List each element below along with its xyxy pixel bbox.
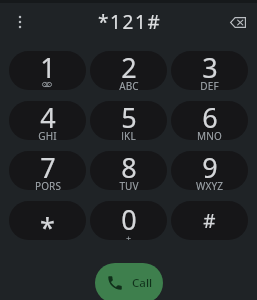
staticText: 4 [40, 101, 56, 136]
staticText: # [203, 208, 216, 234]
button[interactable]: 2 [90, 51, 167, 90]
button[interactable]: * [9, 201, 86, 240]
staticText: ABC [119, 79, 139, 90]
button[interactable]: 4 [9, 101, 86, 140]
staticText: 5 [121, 101, 137, 136]
button[interactable]: Call [95, 263, 163, 300]
button[interactable]: # [171, 201, 248, 240]
staticText: 9 [202, 151, 218, 186]
staticText: 1 [40, 51, 56, 86]
button[interactable]: 7 [9, 151, 86, 190]
button[interactable]: 1 [9, 51, 86, 90]
staticText: 0 [121, 201, 137, 238]
staticText: DEF [200, 79, 219, 90]
staticText: 3 [202, 51, 218, 86]
staticText: MNO [197, 129, 222, 140]
staticText: * [40, 209, 55, 240]
staticText: GHI [38, 129, 57, 140]
staticText: TUV [119, 179, 139, 190]
staticText: + [126, 232, 132, 240]
staticText: WXYZ [196, 179, 223, 190]
button[interactable]: 6 [171, 101, 248, 140]
button[interactable]: 8 [90, 151, 167, 190]
button[interactable]: 5 [90, 101, 167, 140]
staticText: Call [132, 275, 153, 291]
staticText: 6 [202, 101, 218, 136]
button[interactable]: 9 [171, 151, 248, 190]
button[interactable]: Backspace [225, 9, 251, 35]
staticText: JKL [121, 129, 136, 140]
staticText: 2 [121, 51, 137, 86]
staticText: PQRS [35, 179, 61, 190]
staticText: 8 [121, 151, 137, 186]
button[interactable]: 3 [171, 51, 248, 90]
staticText: 7 [40, 151, 56, 186]
button[interactable]: More options [7, 9, 33, 35]
button[interactable]: 0 [90, 201, 167, 240]
staticText: *121# [98, 9, 162, 35]
